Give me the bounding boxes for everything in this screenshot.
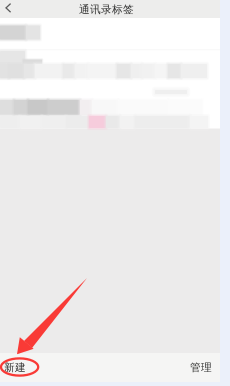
- staticText: 新建: [4, 361, 26, 374]
- button[interactable]: 新建: [0, 356, 30, 379]
- button[interactable]: Back: [0, 0, 17, 18]
- staticText: 管理: [190, 361, 212, 374]
- staticText: 通讯录标签: [79, 3, 134, 16]
- button[interactable]: 管理: [186, 356, 216, 379]
